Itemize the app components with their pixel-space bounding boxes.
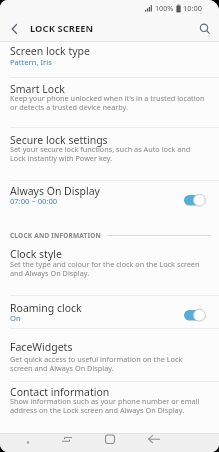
staticText: 100%: [155, 3, 174, 13]
staticText: Screen lock type: [10, 44, 90, 58]
button[interactable]: Secure lock settings: [0, 128, 219, 180]
button[interactable]: [73, 433, 146, 452]
staticText: LOCK SCREEN: [30, 22, 94, 35]
staticText: CLOCK AND INFORMATION: [10, 231, 102, 240]
button[interactable]: [146, 433, 219, 452]
button[interactable]: Roaming clock: [0, 296, 219, 328]
staticText: Secure lock settings: [10, 133, 108, 147]
button[interactable]: [197, 21, 213, 37]
staticText: Pattern, Iris: [10, 57, 52, 67]
staticText: Get quick access to useful information o…: [10, 354, 183, 373]
staticText: Clock style: [10, 247, 62, 261]
staticText: On: [10, 313, 21, 323]
button[interactable]: FaceWidgets: [0, 329, 219, 381]
button[interactable]: Contact information: [0, 382, 219, 419]
staticText: Smart Lock: [10, 82, 65, 96]
staticText: Contact information: [10, 385, 110, 399]
button[interactable]: [6, 21, 22, 37]
staticText: Set your secure lock functions, such as …: [10, 144, 191, 163]
button[interactable]: Always On Display: [0, 181, 219, 207]
staticText: Roaming clock: [10, 301, 82, 315]
button[interactable]: Smart Lock: [0, 78, 219, 127]
staticText: Always On Display: [10, 184, 100, 198]
staticText: Set the type and colour for the clock on…: [10, 259, 200, 278]
staticText: FaceWidgets: [10, 340, 73, 354]
staticText: Keep your phone unlocked when it's in a …: [10, 93, 205, 112]
button[interactable]: Screen lock type: [0, 42, 219, 77]
staticText: Show information such as your phone numb…: [10, 396, 200, 415]
button[interactable]: [0, 433, 73, 452]
button[interactable]: Clock style: [0, 247, 219, 295]
staticText: 10:00: [183, 3, 202, 13]
staticText: 07:00 ~ 00:00: [10, 196, 58, 206]
